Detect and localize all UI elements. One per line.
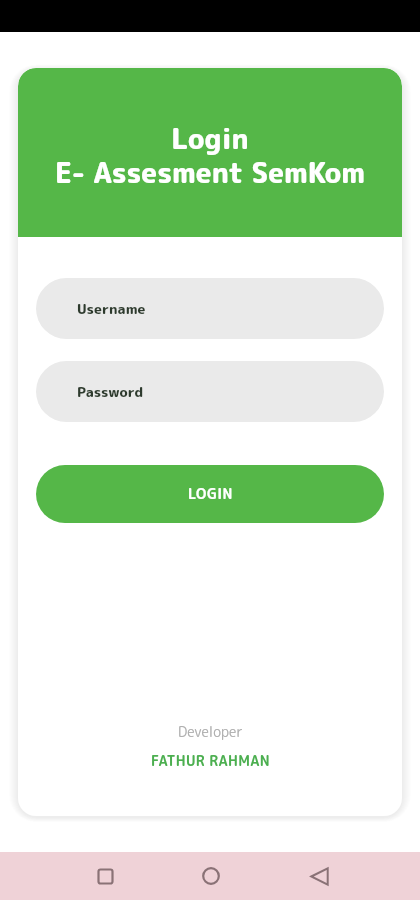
button[interactable]: Password: [36, 361, 384, 422]
button[interactable]: Recents: [53, 852, 158, 900]
staticText: Developer: [178, 722, 243, 742]
button[interactable]: Home: [158, 852, 263, 900]
button[interactable]: Back: [263, 852, 368, 900]
staticText: FATHUR RAHMAN: [151, 751, 270, 771]
button[interactable]: LOGIN: [36, 465, 384, 523]
staticText: Password: [77, 382, 144, 402]
staticText: Username: [77, 299, 146, 319]
button[interactable]: Username: [36, 278, 384, 339]
staticText: LOGIN: [188, 484, 233, 504]
staticText: Login E- Assesment SemKom: [18, 119, 402, 192]
